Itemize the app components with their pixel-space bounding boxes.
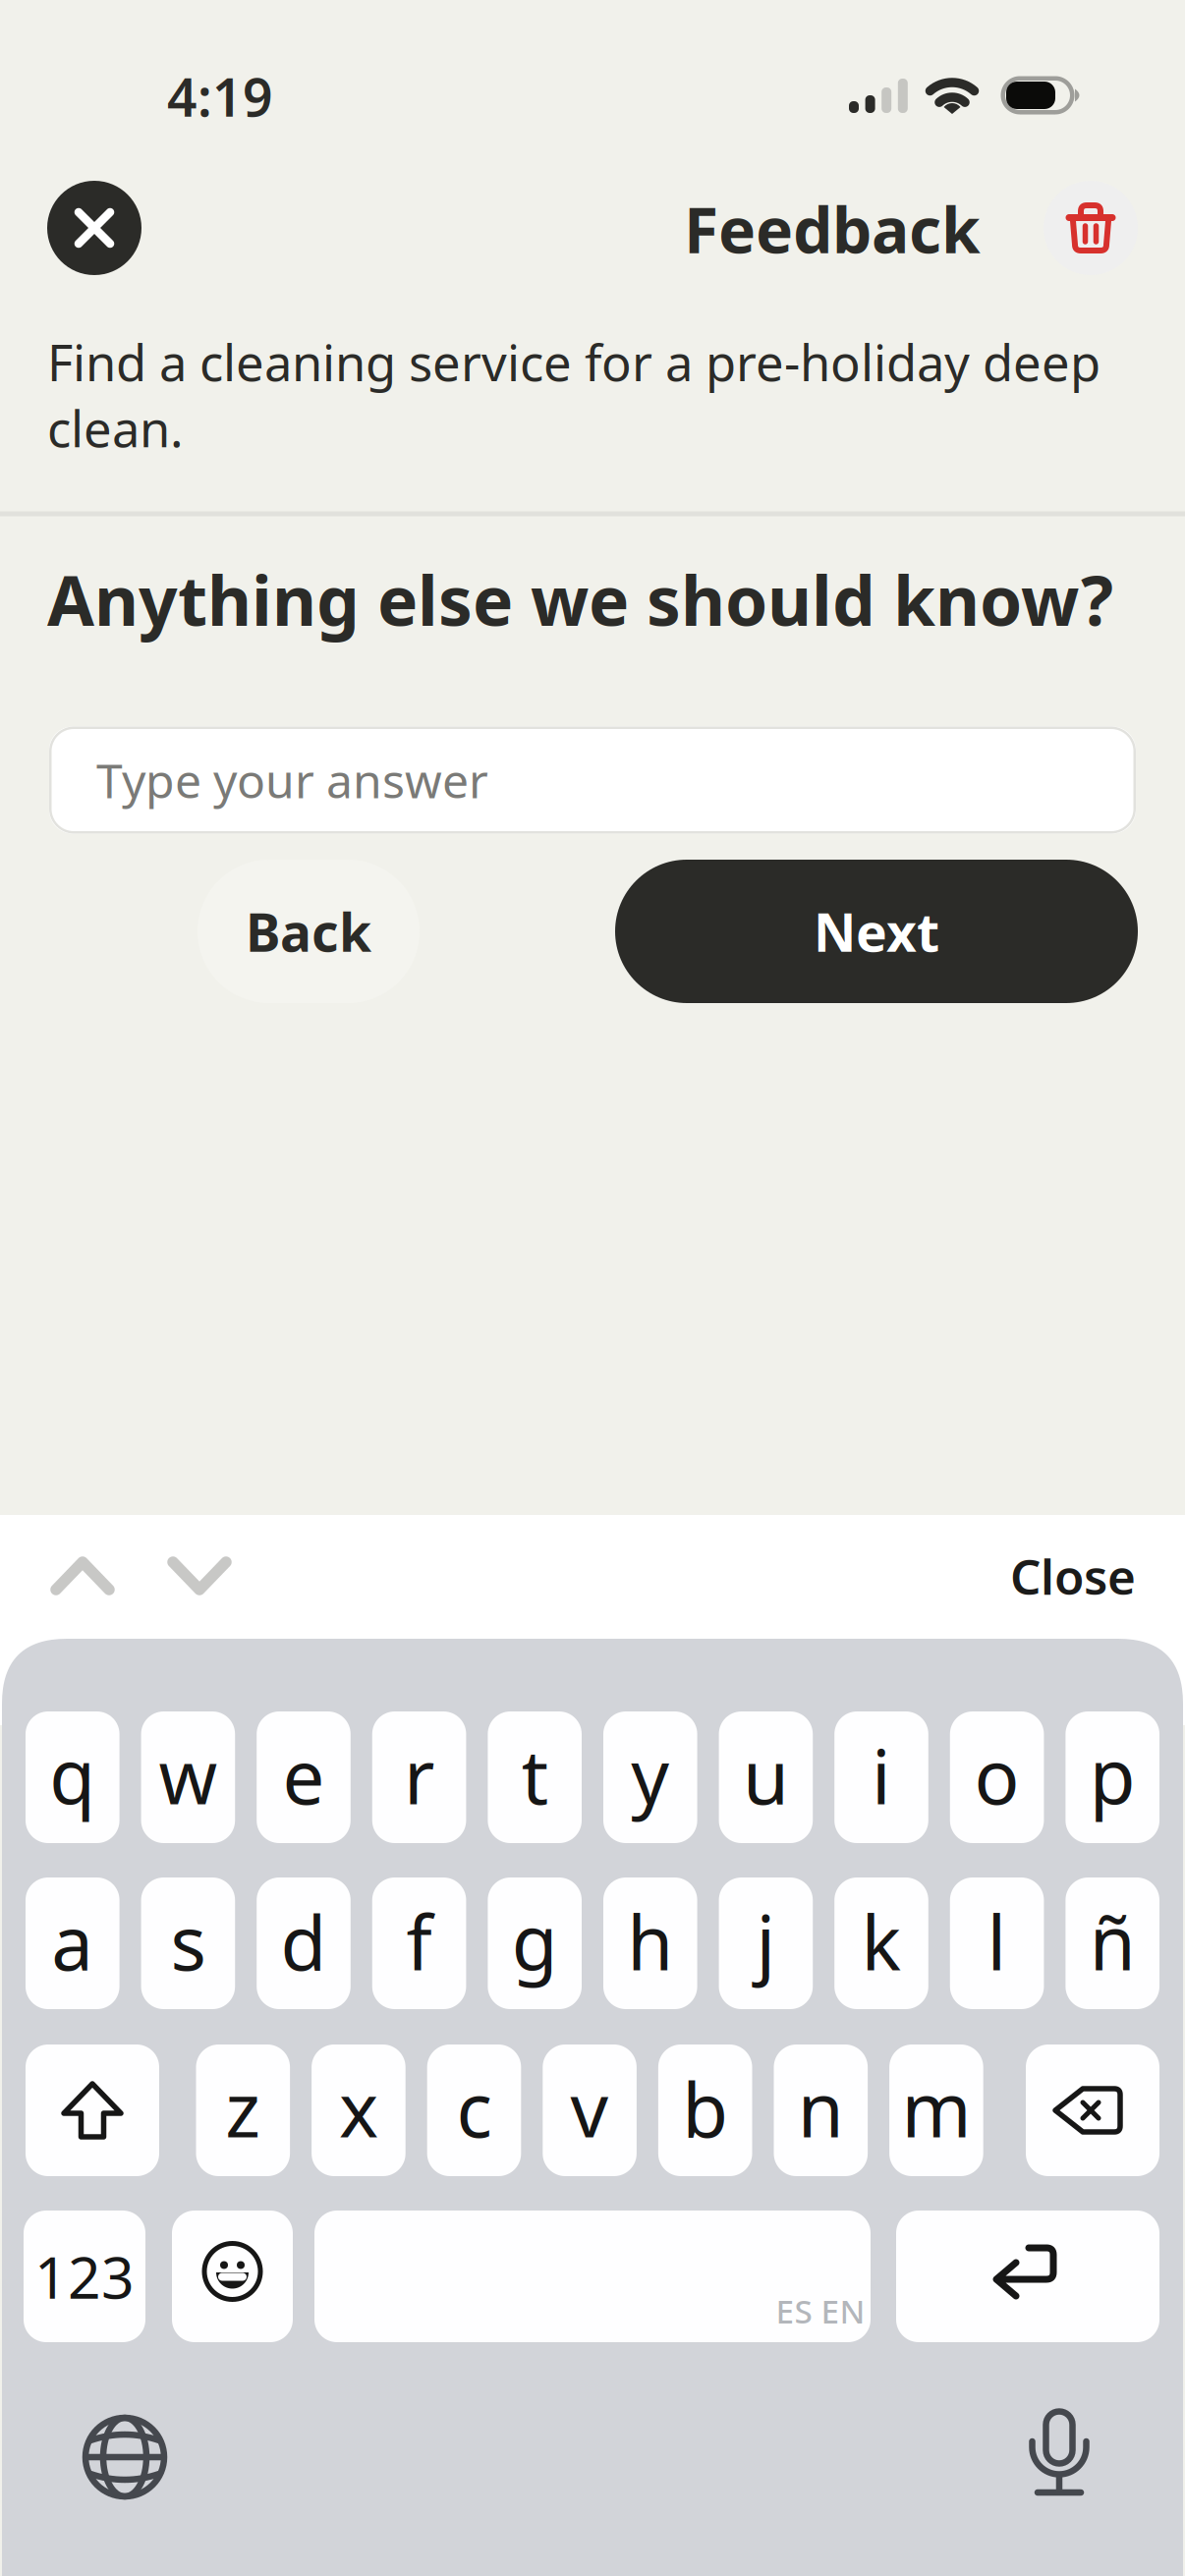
staticText: ES EN bbox=[776, 2289, 865, 2333]
button[interactable]: d bbox=[257, 1877, 351, 2009]
button[interactable]: h bbox=[603, 1877, 697, 2009]
button[interactable]: q bbox=[26, 1711, 119, 1843]
staticText: Feedback bbox=[684, 187, 981, 271]
staticText: x bbox=[339, 2059, 378, 2158]
button[interactable]: u bbox=[719, 1711, 813, 1843]
button[interactable]: x bbox=[312, 2044, 406, 2176]
button[interactable]: Next keyboard bbox=[71, 2403, 179, 2511]
button[interactable]: p bbox=[1066, 1711, 1159, 1843]
staticText: y bbox=[631, 1726, 669, 1825]
staticText: u bbox=[743, 1726, 789, 1825]
staticText: p bbox=[1089, 1726, 1136, 1825]
staticText: t bbox=[521, 1726, 548, 1825]
button[interactable]: k bbox=[834, 1877, 928, 2009]
button[interactable]: v bbox=[543, 2044, 637, 2176]
staticText: f bbox=[406, 1892, 432, 1991]
staticText: Find a cleaning service for a pre-holida… bbox=[47, 329, 1100, 461]
button[interactable]: Delete bbox=[1044, 181, 1138, 275]
staticText: m bbox=[901, 2059, 971, 2158]
button[interactable]: z bbox=[196, 2044, 290, 2176]
button[interactable]: Space bbox=[314, 2211, 871, 2342]
button[interactable]: a bbox=[26, 1877, 119, 2009]
staticText: w bbox=[159, 1726, 218, 1825]
staticText: b bbox=[682, 2059, 728, 2158]
staticText: Next bbox=[814, 897, 939, 966]
staticText: 4:19 bbox=[167, 62, 273, 131]
button[interactable]: w bbox=[141, 1711, 235, 1843]
button[interactable]: f bbox=[372, 1877, 466, 2009]
button[interactable]: Emoji bbox=[172, 2211, 293, 2342]
staticText: g bbox=[512, 1892, 558, 1991]
staticText: c bbox=[456, 2059, 492, 2158]
staticText: o bbox=[974, 1726, 1020, 1825]
button[interactable]: i bbox=[834, 1711, 928, 1843]
button[interactable]: Back bbox=[197, 860, 420, 1003]
button[interactable]: Numbers bbox=[24, 2211, 145, 2342]
button[interactable]: Dictation bbox=[1005, 2402, 1113, 2510]
button[interactable]: m bbox=[889, 2044, 983, 2176]
staticText: v bbox=[570, 2059, 609, 2158]
staticText: k bbox=[861, 1892, 902, 1991]
staticText: j bbox=[756, 1892, 776, 1991]
button[interactable]: g bbox=[488, 1877, 582, 2009]
staticText: ñ bbox=[1089, 1892, 1136, 1991]
button[interactable]: ñ bbox=[1066, 1877, 1159, 2009]
staticText: l bbox=[987, 1892, 1007, 1991]
staticText: h bbox=[627, 1892, 673, 1991]
staticText: d bbox=[281, 1892, 327, 1991]
staticText: r bbox=[404, 1726, 434, 1825]
staticText: Type your answer bbox=[96, 749, 488, 811]
staticText: Anything else we should know? bbox=[47, 554, 1113, 645]
staticText: Close bbox=[1010, 1544, 1136, 1608]
staticText: n bbox=[798, 2059, 844, 2158]
button[interactable]: r bbox=[372, 1711, 466, 1843]
button[interactable]: Next bbox=[615, 860, 1138, 1003]
staticText: 123 bbox=[34, 2238, 135, 2315]
button[interactable]: Close bbox=[47, 181, 141, 275]
button[interactable]: b bbox=[658, 2044, 752, 2176]
button[interactable]: o bbox=[950, 1711, 1044, 1843]
button[interactable]: s bbox=[141, 1877, 235, 2009]
staticText: e bbox=[282, 1726, 325, 1825]
button[interactable]: c bbox=[427, 2044, 521, 2176]
button[interactable]: n bbox=[774, 2044, 868, 2176]
button[interactable]: Shift bbox=[26, 2044, 159, 2176]
button[interactable]: l bbox=[950, 1877, 1044, 2009]
button[interactable]: y bbox=[603, 1711, 697, 1843]
staticText: Back bbox=[246, 897, 371, 966]
staticText: s bbox=[170, 1892, 206, 1991]
button[interactable]: Next field bbox=[157, 1534, 242, 1618]
button[interactable]: Close bbox=[1010, 1544, 1136, 1608]
staticText: a bbox=[51, 1892, 94, 1991]
button[interactable]: Previous field bbox=[40, 1534, 125, 1618]
staticText: q bbox=[49, 1726, 96, 1825]
staticText: i bbox=[872, 1726, 891, 1825]
button[interactable]: e bbox=[257, 1711, 351, 1843]
button[interactable]: Type your answer bbox=[49, 727, 1136, 834]
button[interactable]: t bbox=[488, 1711, 582, 1843]
button[interactable]: Return bbox=[896, 2211, 1159, 2342]
button[interactable]: j bbox=[719, 1877, 813, 2009]
staticText: z bbox=[225, 2059, 261, 2158]
button[interactable]: Delete bbox=[1026, 2044, 1159, 2176]
